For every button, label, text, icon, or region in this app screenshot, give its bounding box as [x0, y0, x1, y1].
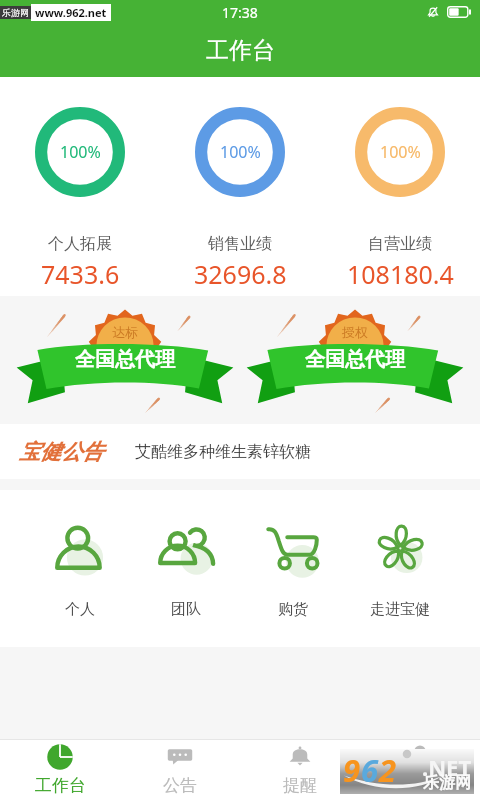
button[interactable]: 我的	[360, 739, 480, 796]
staticText: 乐游网	[2, 7, 29, 18]
staticText: 团队	[171, 600, 201, 619]
button[interactable]: 工作台	[0, 739, 120, 796]
staticText: 个人拓展	[48, 234, 112, 254]
staticText: 授权	[342, 324, 368, 340]
button[interactable]: 购货	[239, 490, 346, 619]
button[interactable]: 个人	[27, 490, 133, 619]
staticText: 108180.4	[347, 257, 454, 291]
button[interactable]: 公告	[120, 739, 240, 796]
staticText: www.962.net	[35, 5, 107, 20]
staticText: 9	[343, 749, 361, 791]
staticText: 提醒	[283, 775, 317, 796]
staticText: 自营业绩	[368, 234, 432, 254]
staticText: 购货	[278, 600, 308, 619]
staticText: 乐游网	[423, 773, 471, 793]
staticText: 我的	[403, 775, 437, 796]
button[interactable]: 提醒	[240, 739, 360, 796]
button[interactable]: 100%	[0, 77, 160, 291]
staticText: 32696.8	[194, 257, 287, 291]
staticText: .NET	[422, 752, 472, 782]
button[interactable]: 授权	[250, 296, 460, 424]
staticText: 17:38	[222, 3, 258, 22]
button[interactable]: 走进宝健	[346, 490, 453, 619]
button[interactable]: 100%	[320, 77, 480, 291]
staticText: 走进宝健	[370, 600, 430, 619]
staticText: 工作台	[35, 775, 86, 796]
staticText: 6	[361, 749, 379, 791]
staticText: 全国总代理	[305, 347, 405, 372]
button[interactable]: 团队	[133, 490, 239, 619]
staticText: 7433.6	[41, 257, 120, 291]
button[interactable]: 宝健公告	[0, 424, 480, 479]
staticText: 100%	[220, 141, 261, 163]
button[interactable]: 100%	[160, 77, 320, 291]
staticText: 工作台	[206, 36, 275, 65]
staticText: 达标	[112, 324, 138, 340]
staticText: 销售业绩	[208, 234, 272, 254]
staticText: 100%	[380, 141, 421, 163]
button[interactable]: 达标	[20, 296, 230, 424]
staticText: 宝健公告	[19, 439, 103, 465]
staticText: 全国总代理	[75, 347, 175, 372]
staticText: 公告	[163, 775, 197, 796]
staticText: 艾酷维多种维生素锌软糖	[135, 442, 311, 462]
staticText: 100%	[60, 141, 101, 163]
staticText: 个人	[65, 600, 95, 619]
staticText: 2	[379, 749, 397, 791]
